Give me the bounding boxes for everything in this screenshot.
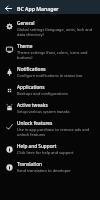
button[interactable]: Applications — [0, 81, 100, 99]
staticText: Translation — [17, 161, 42, 167]
button[interactable]: Navigate up — [0, 3, 17, 14]
button[interactable]: Theme — [0, 40, 100, 63]
staticText: Configure notifications in status bar — [17, 73, 83, 78]
staticText: Theme settings (font, colors, icons and … — [17, 50, 96, 60]
staticText: Help and Support — [17, 143, 57, 149]
button[interactable]: Notifications — [0, 63, 100, 81]
staticText: Click here for help and support — [17, 150, 74, 155]
staticText: Global settings (language, units, lock a… — [17, 27, 96, 37]
staticText: Notifications — [17, 66, 46, 72]
staticText: Backups and configurations — [17, 91, 68, 96]
button[interactable]: Help and Support — [0, 140, 100, 158]
staticText: Setup various system tweaks — [17, 109, 70, 114]
button[interactable]: General — [0, 17, 100, 40]
staticText: General — [17, 20, 35, 26]
button[interactable]: Translation — [0, 158, 100, 176]
staticText: Theme — [17, 43, 33, 49]
button[interactable]: Active tweaks — [0, 99, 100, 117]
staticText: Active tweaks — [17, 102, 48, 108]
staticText: Unlock features — [17, 120, 53, 126]
button[interactable]: Unlock features — [0, 117, 100, 140]
staticText: Send translation to developer — [17, 168, 71, 173]
staticText: BC App Manager — [17, 5, 59, 12]
staticText: Applications — [17, 84, 45, 90]
staticText: Use in app purchase to remove ads and un… — [17, 127, 96, 137]
